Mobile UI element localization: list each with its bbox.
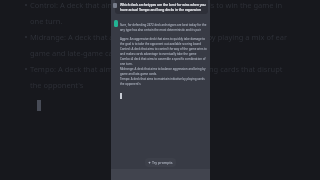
staticText: Combo: A deck that aims to assemble a sp… — [120, 57, 208, 62]
staticText: one turn. — [30, 16, 63, 32]
staticText: game and late-game cards. — [120, 72, 157, 77]
staticText: Control: A deck that aims to control the… — [120, 47, 208, 52]
staticText: ✦ Try prompts — [148, 160, 173, 165]
staticText: Tempo: A deck that aims to maintain init… — [30, 64, 283, 80]
button[interactable]: ✦ Try prompts — [148, 160, 173, 165]
staticText: the goal is to take the opponent out ava… — [120, 42, 208, 47]
staticText: any type has also certain the most deter… — [120, 28, 208, 33]
staticText: game and late-game cards. — [30, 48, 126, 64]
staticText: Sure, for defending 2472 deck archetypes… — [120, 23, 208, 28]
staticText: Midrange: A deck that aims to balance ag… — [30, 32, 287, 48]
staticText: the opponent's — [120, 82, 141, 87]
staticText: one turn. — [120, 62, 133, 67]
staticText: and makes cards advantage to eventually … — [120, 52, 197, 57]
staticText: have actual Tempo and long decks in the … — [120, 7, 202, 12]
staticText: Control: A deck that aims to control the… — [30, 0, 283, 16]
staticText: Aggro: An aggressive deck that aims to q… — [120, 37, 208, 42]
staticText: Which deck archetypes are the best for w… — [120, 2, 206, 7]
staticText: the opponent's — [30, 80, 84, 96]
staticText: Tempo: A deck that aims to maintain init… — [120, 77, 208, 82]
staticText: Midrange: A deck that aims to balance ag… — [120, 67, 208, 72]
